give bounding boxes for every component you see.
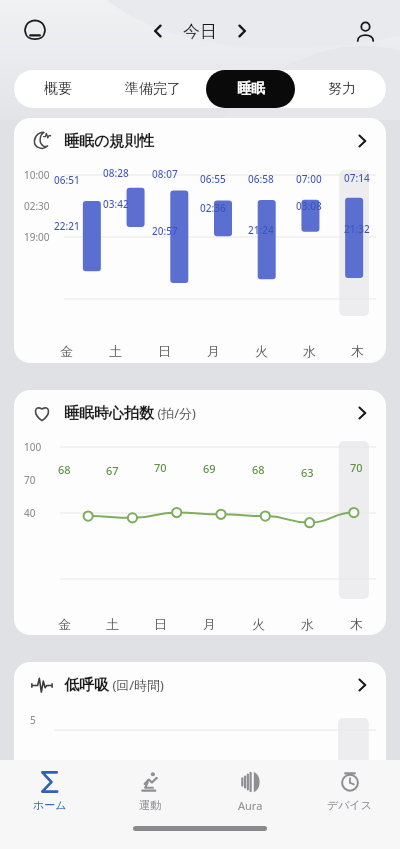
staticText: 69 bbox=[203, 461, 216, 476]
staticText: 08:28 bbox=[103, 166, 129, 180]
staticText: 20:57 bbox=[152, 224, 178, 238]
staticText: 水 bbox=[301, 616, 314, 632]
button[interactable]: 睡眠時心拍数 bbox=[14, 390, 386, 436]
staticText: 70 bbox=[24, 473, 36, 487]
staticText: デバイス bbox=[327, 798, 373, 812]
staticText: 22:21 bbox=[54, 219, 80, 233]
button[interactable]: Next day bbox=[227, 16, 257, 46]
button[interactable]: 睡眠 bbox=[206, 70, 295, 108]
button[interactable]: ホーム bbox=[0, 760, 100, 822]
staticText: 70 bbox=[350, 460, 363, 475]
staticText: 08:07 bbox=[152, 167, 178, 181]
staticText: 今日 bbox=[183, 21, 217, 42]
staticText: 火 bbox=[255, 343, 268, 359]
staticText: 07:14 bbox=[344, 171, 370, 185]
staticText: 木 bbox=[351, 343, 364, 359]
staticText: 63 bbox=[301, 465, 314, 480]
staticText: (回/時間) bbox=[109, 676, 165, 694]
staticText: Aura bbox=[238, 798, 263, 813]
staticText: 40 bbox=[24, 506, 36, 520]
staticText: 金 bbox=[60, 343, 73, 359]
staticText: 努力 bbox=[328, 80, 356, 98]
staticText: 睡眠の規則性 bbox=[64, 132, 155, 151]
staticText: 68 bbox=[58, 462, 71, 477]
button[interactable]: 準備完了 bbox=[104, 70, 202, 108]
staticText: 準備完了 bbox=[125, 80, 181, 98]
staticText: 月 bbox=[203, 616, 216, 632]
staticText: 日 bbox=[154, 616, 167, 632]
staticText: 水 bbox=[303, 343, 316, 359]
staticText: 19:00 bbox=[24, 230, 50, 244]
staticText: 06:58 bbox=[248, 172, 274, 186]
staticText: 21:32 bbox=[344, 222, 370, 236]
staticText: 03:08 bbox=[296, 199, 322, 213]
staticText: 睡眠 bbox=[237, 80, 265, 98]
staticText: 10:00 bbox=[24, 168, 50, 182]
staticText: 5 bbox=[30, 713, 36, 727]
staticText: 07:00 bbox=[296, 172, 322, 186]
staticText: ホーム bbox=[33, 798, 67, 812]
button[interactable]: 努力 bbox=[299, 70, 384, 108]
button[interactable]: Profile bbox=[348, 14, 382, 48]
staticText: 火 bbox=[252, 616, 265, 632]
staticText: 土 bbox=[106, 616, 119, 632]
staticText: 運動 bbox=[139, 798, 161, 812]
button[interactable]: デバイス bbox=[300, 760, 400, 822]
staticText: (拍/分) bbox=[154, 404, 197, 422]
button[interactable]: Previous day bbox=[143, 16, 173, 46]
staticText: 68 bbox=[252, 462, 265, 477]
staticText: 月 bbox=[207, 343, 220, 359]
staticText: 睡眠時心拍数 bbox=[64, 404, 154, 423]
staticText: 02:36 bbox=[200, 201, 226, 215]
staticText: 100 bbox=[24, 440, 42, 454]
staticText: 06:51 bbox=[54, 173, 80, 187]
staticText: 日 bbox=[158, 343, 171, 359]
staticText: 木 bbox=[350, 616, 363, 632]
staticText: 70 bbox=[154, 460, 167, 475]
staticText: 21:24 bbox=[248, 223, 274, 237]
button[interactable]: 運動 bbox=[100, 760, 200, 822]
staticText: 06:55 bbox=[200, 172, 226, 186]
button[interactable]: Watch bbox=[18, 14, 52, 48]
staticText: 概要 bbox=[44, 80, 72, 98]
button[interactable]: 睡眠の規則性 bbox=[14, 118, 386, 164]
staticText: 67 bbox=[106, 463, 119, 478]
staticText: 土 bbox=[109, 343, 122, 359]
button[interactable]: 概要 bbox=[16, 70, 100, 108]
staticText: 03:42 bbox=[103, 197, 129, 211]
staticText: 02:30 bbox=[24, 199, 50, 213]
button[interactable]: 低呼吸 bbox=[14, 662, 386, 708]
button[interactable]: Aura bbox=[200, 760, 300, 822]
staticText: 金 bbox=[58, 616, 71, 632]
staticText: 低呼吸 bbox=[64, 676, 109, 695]
